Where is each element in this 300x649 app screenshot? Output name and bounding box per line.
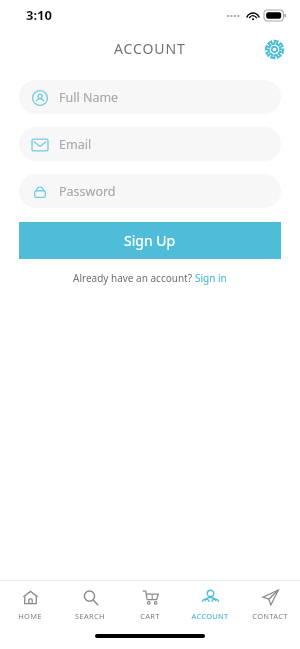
staticText: Full Name — [59, 89, 119, 106]
button[interactable]: Settings — [257, 32, 291, 66]
button[interactable]: Sign in — [195, 271, 227, 285]
staticText: SEARCH — [75, 611, 105, 621]
staticText: ACCOUNT — [191, 611, 229, 621]
button[interactable]: Full Name — [19, 80, 281, 114]
button[interactable]: Password — [19, 174, 281, 208]
button[interactable]: CART — [120, 581, 180, 628]
button[interactable]: ACCOUNT — [180, 581, 240, 628]
staticText: Password — [59, 183, 116, 200]
button[interactable]: Email — [19, 127, 281, 161]
staticText: Already have an account? — [73, 271, 195, 285]
staticText: Sign Up — [124, 231, 176, 250]
staticText: CART — [140, 611, 160, 621]
button[interactable]: SEARCH — [60, 581, 120, 628]
staticText: ACCOUNT — [114, 39, 186, 58]
staticText: Sign in — [195, 271, 227, 285]
button[interactable]: Sign Up — [19, 222, 281, 259]
staticText: CONTACT — [252, 611, 288, 621]
staticText: HOME — [18, 611, 42, 621]
button[interactable]: HOME — [0, 581, 60, 628]
staticText: 3:10 — [26, 6, 52, 24]
staticText: Email — [59, 136, 92, 153]
button[interactable]: CONTACT — [240, 581, 300, 628]
